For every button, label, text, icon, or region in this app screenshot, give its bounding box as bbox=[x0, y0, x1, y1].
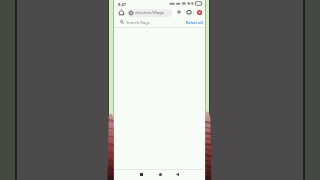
staticText: chrome://flags bbox=[135, 10, 164, 16]
button[interactable]: New tab bbox=[175, 8, 183, 16]
staticText: Search flags bbox=[126, 20, 150, 26]
button[interactable]: Switch tabs bbox=[185, 8, 193, 16]
button[interactable]: Reset all bbox=[186, 19, 203, 26]
staticText: Reset all bbox=[186, 20, 203, 26]
staticText: 8:47 bbox=[118, 2, 126, 7]
button[interactable]: Stop recording bbox=[195, 8, 203, 16]
button[interactable]: Back bbox=[173, 170, 182, 179]
button[interactable]: Home bbox=[156, 170, 165, 179]
button[interactable]: chrome://flags bbox=[127, 9, 172, 17]
button[interactable]: Recents bbox=[137, 170, 146, 179]
button[interactable]: Home bbox=[117, 8, 125, 16]
